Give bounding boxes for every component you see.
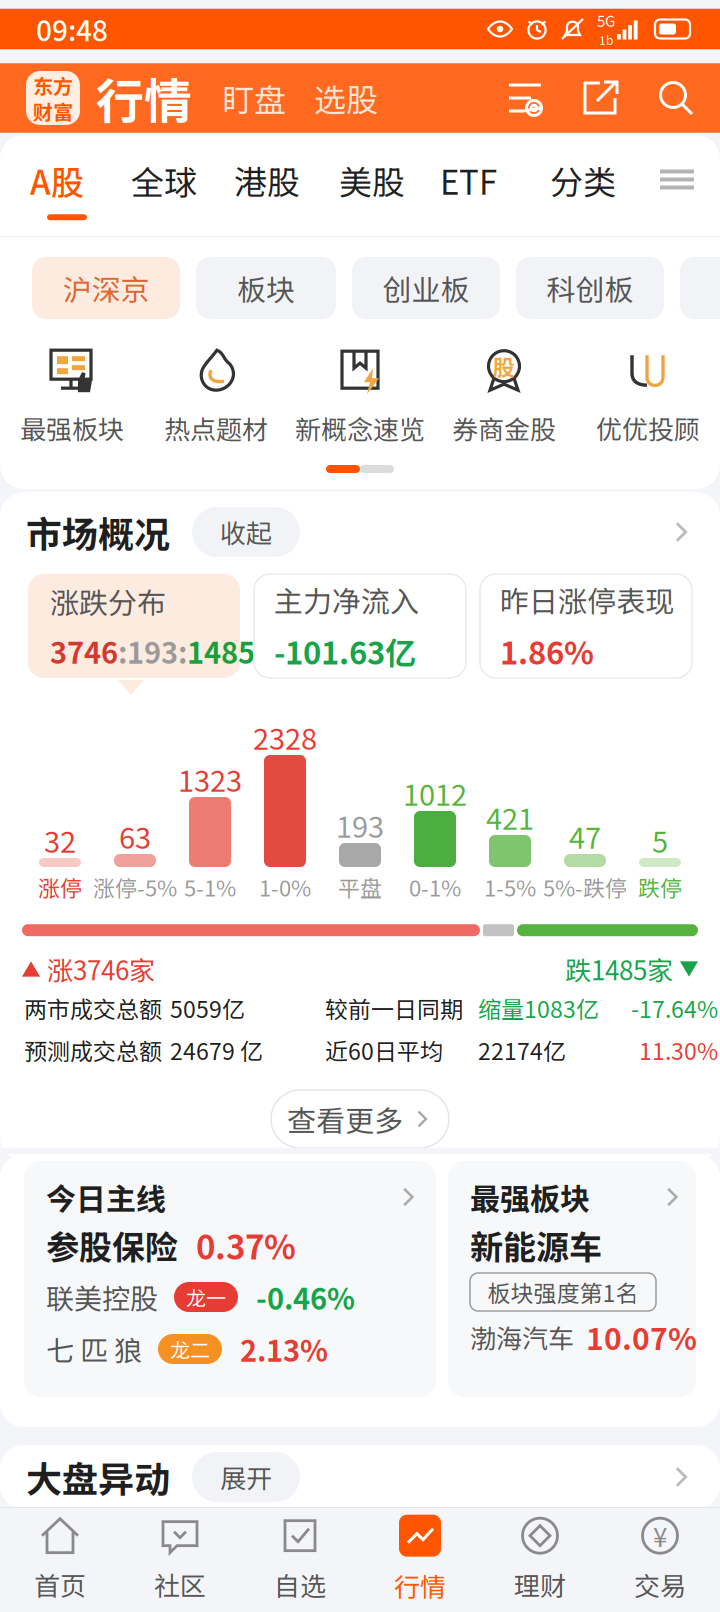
staticText: ETF (440, 156, 497, 204)
staticText: 今日主线 (46, 1175, 166, 1219)
button[interactable]: 全球 (131, 142, 234, 228)
button[interactable]: 选股 (290, 75, 382, 121)
staticText: 5%-跌停 (543, 871, 627, 903)
staticText: 渤海汽车 (470, 1318, 574, 1356)
staticText: 美股 (339, 156, 405, 204)
staticText: 优优投顾 (596, 409, 700, 447)
button[interactable]: 创业板 (352, 257, 500, 319)
button[interactable]: 社区 (120, 1508, 240, 1611)
staticText: 近60日平均 (325, 1033, 443, 1067)
staticText: 预测成交总额 (24, 1033, 162, 1067)
button[interactable]: 科创板 (516, 257, 664, 319)
staticText: 5059亿 (170, 991, 245, 1025)
staticText: 社区 (154, 1566, 206, 1603)
staticText: 10.07% (586, 1315, 697, 1359)
button[interactable]: 沪深京 (32, 257, 180, 319)
button[interactable]: 查看更多 (271, 1090, 449, 1148)
staticText: 缩量1083亿 (478, 991, 599, 1025)
staticText: 最强板块 (470, 1175, 590, 1219)
button[interactable]: 板块 (196, 257, 336, 319)
staticText: 理财 (514, 1566, 566, 1603)
button[interactable]: 大盘异动 (0, 1445, 720, 1509)
staticText: 1-0% (259, 871, 311, 903)
button[interactable]: 自选 (240, 1508, 360, 1611)
staticText: 11.30% (639, 1033, 718, 1067)
staticText: :193: (118, 630, 187, 672)
staticText: 24679 亿 (170, 1033, 263, 1067)
staticText: 市场概况 (26, 506, 170, 558)
button[interactable]: 热点题材 (144, 334, 288, 460)
staticText: 2.13% (240, 1328, 328, 1370)
staticText: 分类 (550, 156, 616, 204)
staticText: 09:48 (36, 9, 108, 49)
button[interactable]: 最强板块 (0, 334, 144, 460)
staticText: 财富 (33, 96, 73, 125)
staticText: 龙二 (170, 1334, 210, 1363)
staticText: 交易 (634, 1566, 686, 1603)
staticText: 选股 (314, 75, 378, 121)
button[interactable]: 搜索 (620, 80, 694, 116)
staticText: 两市成交总额 (24, 991, 162, 1025)
button[interactable]: 优优投顾 (576, 334, 720, 460)
button[interactable]: 分享 (544, 80, 620, 116)
staticText: 涨停-5% (93, 871, 177, 903)
staticText: 2328 (253, 716, 317, 758)
button[interactable]: ETF (440, 142, 550, 228)
staticText: 22174亿 (478, 1033, 566, 1067)
staticText: 1b (599, 31, 613, 49)
staticText: 最强板块 (20, 409, 124, 447)
button[interactable]: 行情 (360, 1508, 480, 1611)
staticText: 涨3746家 (47, 950, 155, 988)
button[interactable]: 新概念速览 (288, 334, 432, 460)
staticText: 收起 (220, 513, 272, 551)
button[interactable]: 股 (432, 334, 576, 460)
staticText: 查看更多 (287, 1098, 403, 1140)
staticText: 板块强度第1名 (487, 1275, 638, 1309)
button[interactable]: 最强板块 (448, 1161, 696, 1397)
staticText: 股 (493, 350, 515, 382)
staticText: 参股保险 (46, 1221, 178, 1269)
staticText: 421 (486, 796, 534, 838)
button[interactable]: A股 (30, 142, 131, 228)
staticText: 港股 (234, 156, 300, 204)
staticText: 龙一 (186, 1282, 226, 1311)
staticText: 涨停 (38, 871, 82, 903)
staticText: 首页 (34, 1566, 86, 1603)
button[interactable]: 首页 (0, 1508, 120, 1611)
staticText: 0-1% (409, 871, 461, 903)
button[interactable]: 盯盘 (196, 75, 290, 121)
staticText: -0.46% (256, 1276, 355, 1318)
staticText: 47 (569, 815, 601, 857)
staticText: 大盘异动 (26, 1451, 170, 1503)
staticText: 32 (44, 819, 76, 861)
staticText: 券商金股 (452, 409, 556, 447)
staticText: 1323 (178, 758, 242, 800)
staticText: 盯盘 (222, 75, 286, 121)
staticText: 5 (652, 819, 668, 861)
staticText: 热点题材 (164, 409, 268, 447)
staticText: 3746 (50, 630, 118, 672)
button[interactable]: 美股 (339, 142, 440, 228)
staticText: -17.64% (631, 991, 718, 1025)
button[interactable]: 市场概况 (0, 492, 720, 572)
staticText: 涨跌分布 (50, 580, 166, 622)
staticText: A股 (30, 156, 84, 204)
staticText: ¥ (653, 1517, 667, 1554)
button[interactable]: 分类 (550, 142, 620, 228)
staticText: 63 (119, 815, 151, 857)
staticText: 新能源车 (470, 1221, 602, 1269)
staticText: 193 (336, 804, 384, 846)
button[interactable]: 理财 (480, 1508, 600, 1611)
staticText: 联美控股 (46, 1277, 158, 1317)
button[interactable]: 全部分类 (660, 169, 696, 201)
button[interactable]: 行情 (80, 63, 196, 133)
button[interactable]: 港股 (234, 142, 339, 228)
staticText: 自选 (274, 1566, 326, 1603)
staticText: 行情 (394, 1567, 446, 1604)
staticText: 1485 (187, 630, 255, 672)
button[interactable]: ¥ (600, 1508, 720, 1611)
staticText: 主力净流入 (274, 579, 419, 621)
button[interactable]: 自选设置 (508, 80, 544, 116)
button[interactable]: 今日主线 (24, 1161, 436, 1397)
